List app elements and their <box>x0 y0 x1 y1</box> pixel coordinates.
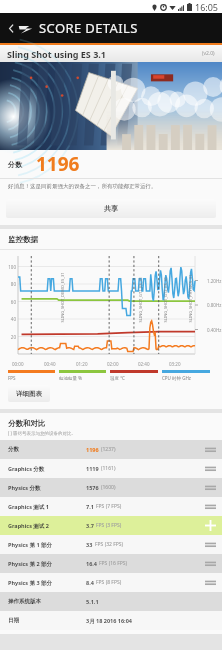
staticText: 0.80Hz <box>207 302 222 308</box>
staticText: 详细图表 <box>16 390 42 398</box>
staticText: Sling Shot using ES 3.1 <box>7 48 106 60</box>
button[interactable]: Physics 第 2 部分 <box>0 554 222 573</box>
button[interactable]: Graphics 测试 2 <box>0 516 222 535</box>
staticText: 5.1.1 <box>86 598 99 605</box>
staticText: FPS (16 FPS) <box>99 560 128 567</box>
other: Equal <box>205 501 216 512</box>
staticText: SCORE DETAILS <box>39 19 138 37</box>
staticText: 1196 <box>36 151 80 177</box>
staticText: 监控数据 <box>8 235 38 244</box>
staticText: 80 <box>0 281 16 287</box>
staticText: Physics 分数 <box>8 484 86 492</box>
staticText: 20 <box>0 334 16 340</box>
staticText: 40 <box>0 316 16 322</box>
other: Better <box>205 520 216 531</box>
staticText: (v2.0) <box>202 50 215 57</box>
staticText: 00:00 <box>12 361 24 367</box>
staticText: 1576 <box>86 484 99 491</box>
staticText: (1600) <box>101 484 116 491</box>
staticText: 分数 <box>8 160 22 169</box>
staticText: 02:00 <box>107 361 119 367</box>
staticText: 分数和对比 <box>8 419 46 428</box>
staticText: Graphics 测试 1 <box>8 503 86 511</box>
staticText: Graphics 测试 2 <box>8 522 86 530</box>
staticText: Graphics 分数 <box>8 465 86 473</box>
staticText: FPS (7 FPS) <box>96 503 122 510</box>
staticText: 100 <box>0 264 16 270</box>
button[interactable]: Physics 第 3 部分 <box>0 573 222 592</box>
button[interactable]: 分数 <box>0 440 222 459</box>
staticText: 操作系统版本 <box>8 598 86 605</box>
staticText: 8.4 <box>86 579 94 586</box>
staticText: 1196 <box>86 446 99 453</box>
staticText: 1.20Hz <box>207 278 222 284</box>
staticText: 33 <box>86 541 93 548</box>
staticText: 01:20 <box>76 361 88 367</box>
button[interactable]: Graphics 分数 <box>0 459 222 478</box>
staticText: 0.40Hz <box>207 327 222 333</box>
staticText: 3月 18 2016 16:04 <box>86 617 132 625</box>
staticText: 16:05 <box>195 1 219 13</box>
button[interactable]: Physics 分数 <box>0 478 222 497</box>
staticText: 日期 <box>8 617 86 624</box>
staticText: 00:40 <box>44 361 56 367</box>
staticText: 7.1 <box>86 503 94 510</box>
other: Equal <box>205 482 216 493</box>
staticText: (1161) <box>101 465 116 472</box>
staticText: 电池电量 % <box>59 375 82 381</box>
button[interactable]: Back <box>6 17 16 39</box>
staticText: FPS (8 FPS) <box>96 579 122 586</box>
staticText: (1237) <box>101 446 116 453</box>
button[interactable]: 详细图表 <box>8 385 50 402</box>
other: Equal <box>205 577 216 588</box>
staticText: 分数 <box>8 446 86 453</box>
staticText: SLING_SHOT_GT2_ES_31 <box>162 276 167 322</box>
staticText: CPU 时钟 GHz <box>162 375 191 381</box>
staticText: 温度 °C <box>110 375 125 381</box>
staticText: 16.4 <box>86 560 97 567</box>
staticText: 共享 <box>104 204 118 213</box>
other: Equal <box>205 558 216 569</box>
other: Equal <box>205 539 216 550</box>
staticText: 1119 <box>86 465 99 472</box>
button[interactable]: 操作系统版本 <box>0 592 222 611</box>
staticText: SLING_SHOT_DEMO_ES_31 <box>59 272 64 322</box>
button[interactable]: 共享 <box>6 199 216 218</box>
staticText: 3.7 <box>86 522 94 529</box>
staticText: 好消息！这是目前最强大的设备之一，所有功能都正常运行。 <box>8 183 157 190</box>
staticText: Physics 第 1 部分 <box>8 541 86 549</box>
button[interactable]: 日期 <box>0 611 222 630</box>
button[interactable]: Physics 第 1 部分 <box>0 535 222 554</box>
button[interactable]: Graphics 测试 1 <box>0 497 222 516</box>
staticText: 60 <box>0 299 16 305</box>
staticText: FPS <box>8 375 16 381</box>
other: Equal <box>205 463 216 474</box>
staticText: ( ) 圆括号表示与您的设备的对比。 <box>8 430 77 436</box>
staticText: SLING_SHOT_PHYSICS_31 <box>187 274 192 322</box>
other: Equal <box>205 444 216 455</box>
staticText: FPS (3 FPS) <box>96 522 122 529</box>
staticText: FPS (32 FPS) <box>95 541 124 548</box>
staticText: Physics 第 2 部分 <box>8 560 86 568</box>
staticText: Physics 第 3 部分 <box>8 579 86 587</box>
staticText: 03:20 <box>169 361 181 367</box>
staticText: SLING_SHOT_GT1_ES_31 <box>137 276 142 322</box>
staticText: 02:40 <box>138 361 150 367</box>
